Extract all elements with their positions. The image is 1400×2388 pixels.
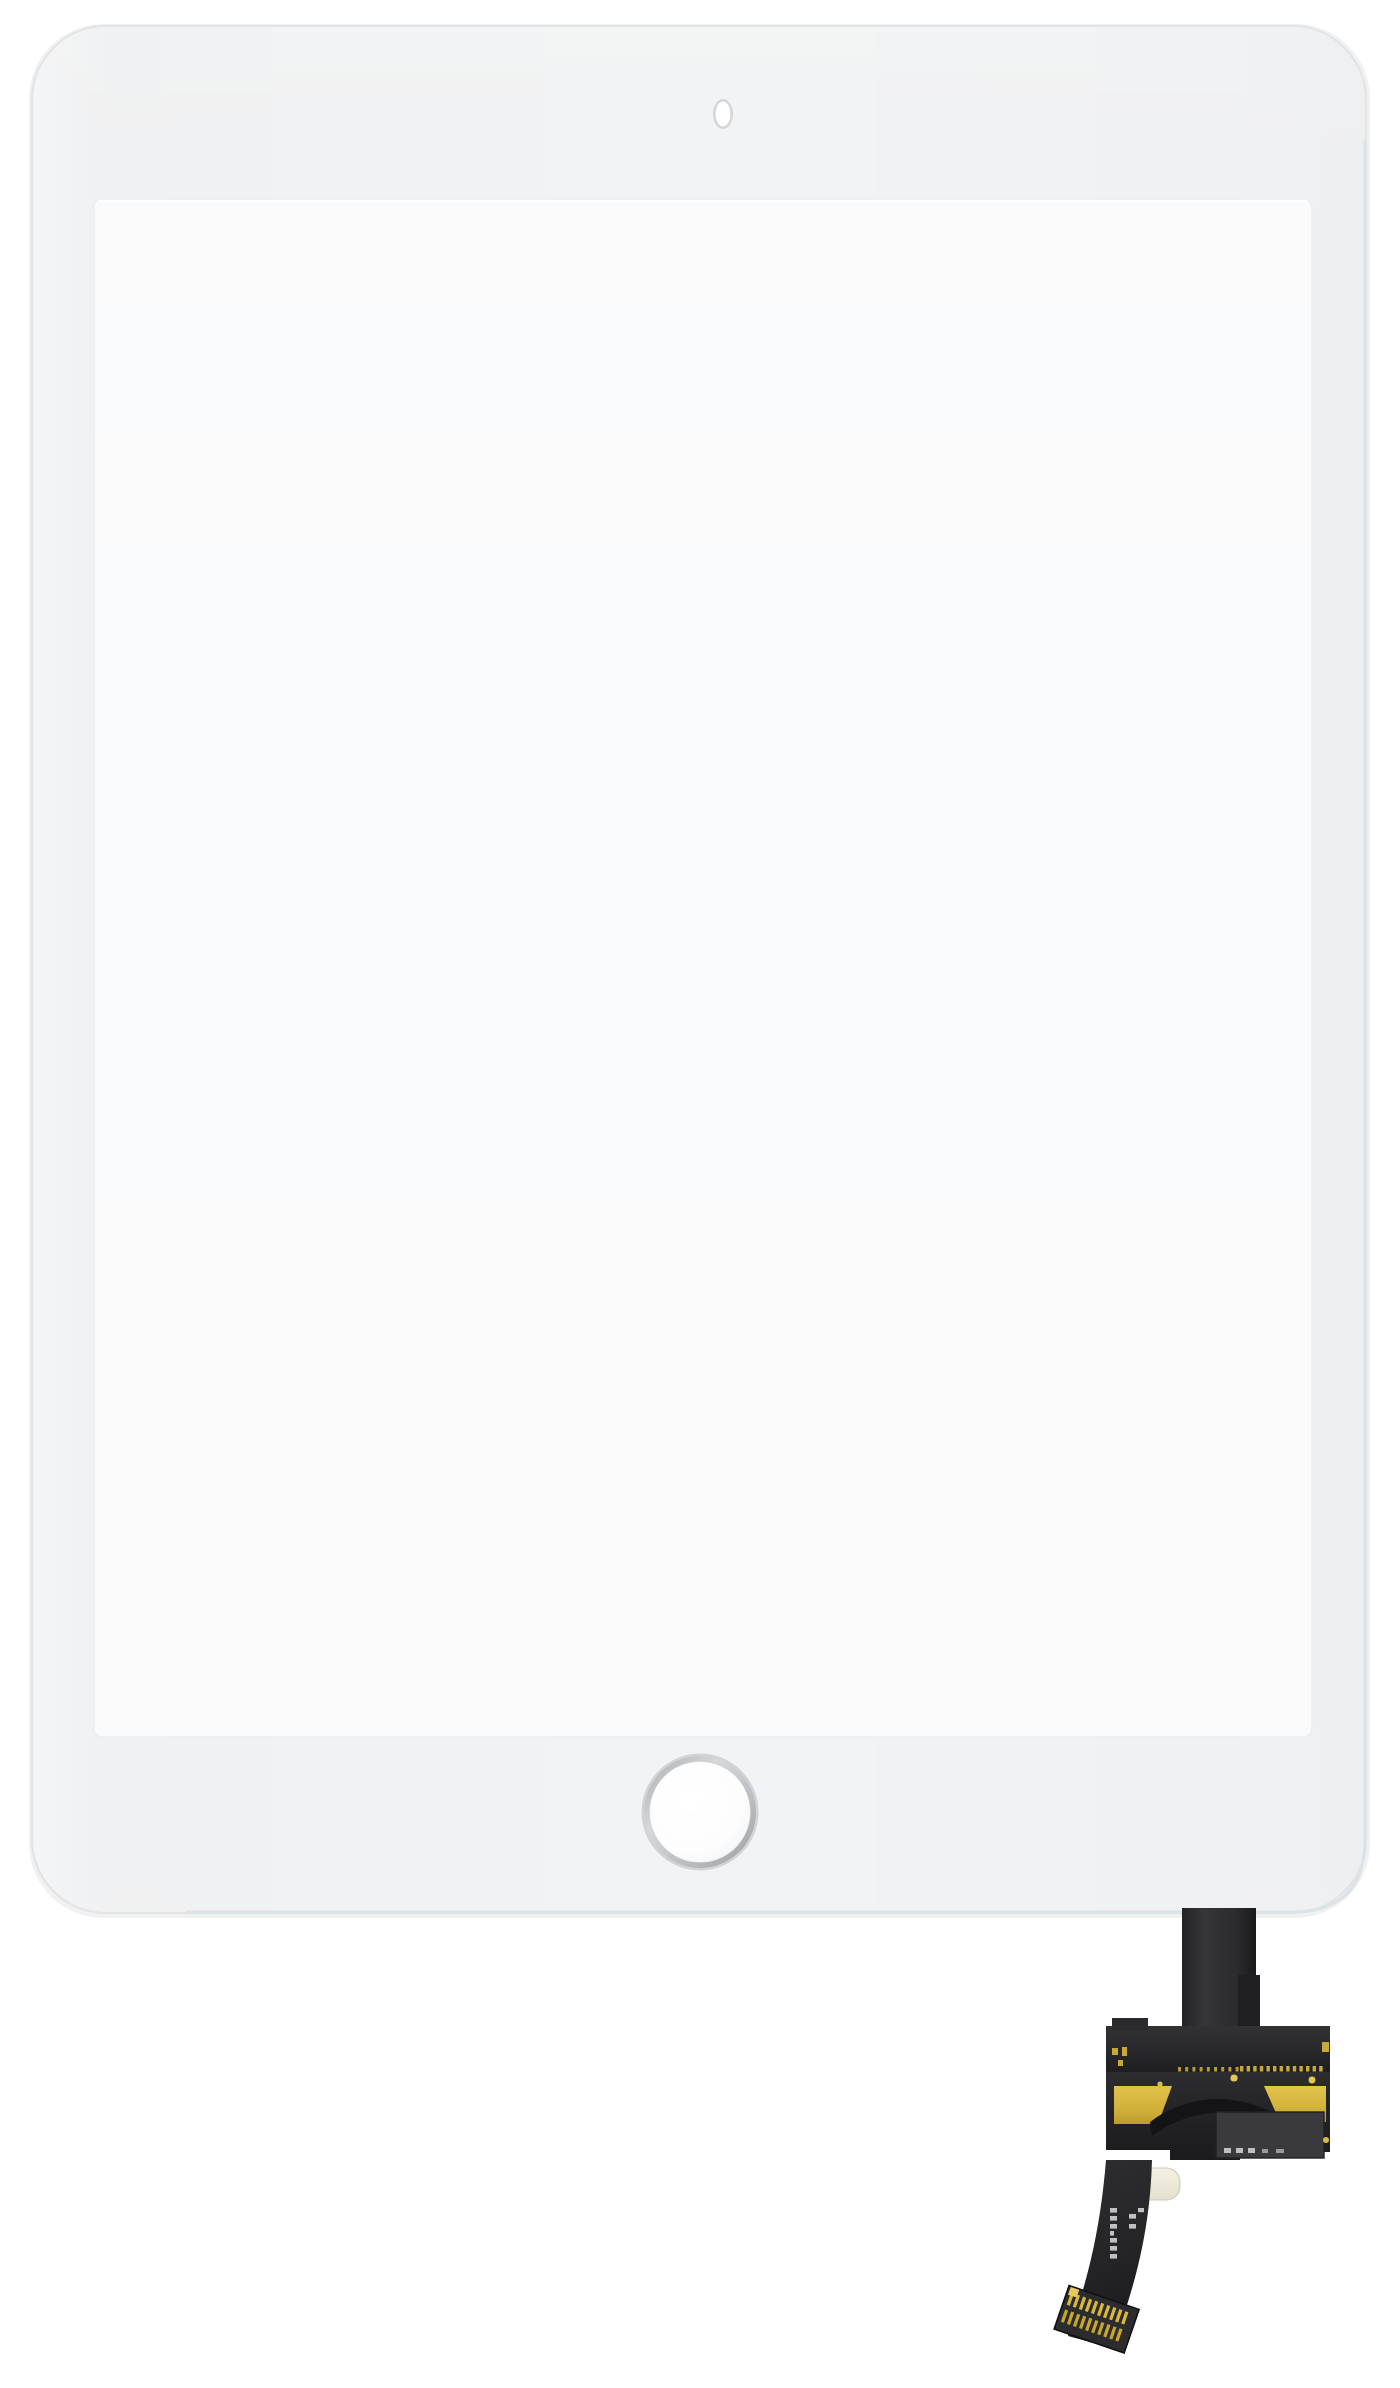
button[interactable]: iPad mini digitizer touch screen assembl…: [0, 0, 1400, 2388]
